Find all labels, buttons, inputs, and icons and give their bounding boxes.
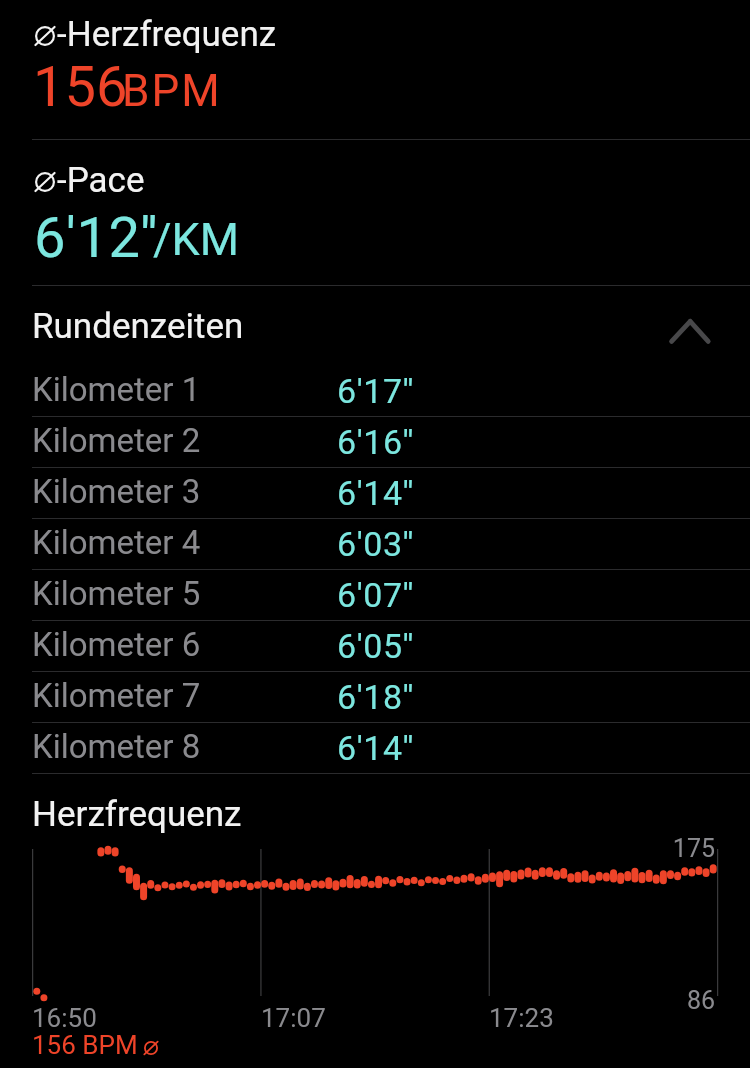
- staticText: Kilometer 5: [32, 574, 201, 613]
- button[interactable]: Rundenzeiten zuklappen: [654, 300, 726, 362]
- staticText: -Herzfrequenz: [57, 14, 277, 55]
- staticText: Kilometer 4: [32, 523, 201, 562]
- staticText: 17:07: [261, 1003, 326, 1033]
- staticText: 6'07'': [337, 575, 415, 615]
- staticText: 16:50: [32, 1003, 97, 1033]
- staticText: -Pace: [57, 160, 145, 201]
- staticText: Kilometer 8: [32, 727, 201, 766]
- staticText: 6'14'': [337, 728, 415, 768]
- button[interactable]: Rundenzeiten: [0, 286, 750, 365]
- staticText: 156 BPM: [32, 1030, 138, 1060]
- button[interactable]: Kilometer 2: [0, 416, 750, 467]
- button[interactable]: Kilometer 7: [0, 671, 750, 722]
- staticText: 6'05'': [337, 626, 415, 666]
- button[interactable]: Kilometer 4: [0, 518, 750, 569]
- button[interactable]: Kilometer 6: [0, 620, 750, 671]
- staticText: 6'14'': [337, 473, 415, 513]
- staticText: /KM: [153, 213, 240, 266]
- staticText: 6'17'': [337, 371, 415, 411]
- staticText: 86: [686, 986, 715, 1015]
- staticText: 6'16'': [337, 422, 415, 462]
- staticText: Kilometer 1: [32, 370, 201, 409]
- staticText: Kilometer 6: [32, 625, 201, 664]
- staticText: Kilometer 2: [32, 421, 201, 460]
- staticText: 6'12'': [34, 205, 159, 271]
- staticText: 6'03'': [337, 524, 415, 564]
- button[interactable]: Kilometer 1: [0, 365, 750, 416]
- staticText: 17:23: [489, 1003, 554, 1033]
- button[interactable]: Kilometer 3: [0, 467, 750, 518]
- staticText: BPM: [122, 65, 222, 117]
- staticText: 156: [33, 54, 128, 120]
- button[interactable]: Kilometer 5: [0, 569, 750, 620]
- staticText: Rundenzeiten: [32, 306, 244, 347]
- staticText: 6'18'': [337, 677, 415, 717]
- staticText: Kilometer 3: [32, 472, 201, 511]
- staticText: Herzfrequenz: [32, 794, 242, 835]
- staticText: 175: [672, 834, 715, 863]
- button[interactable]: Kilometer 8: [0, 722, 750, 773]
- staticText: Kilometer 7: [32, 676, 201, 715]
